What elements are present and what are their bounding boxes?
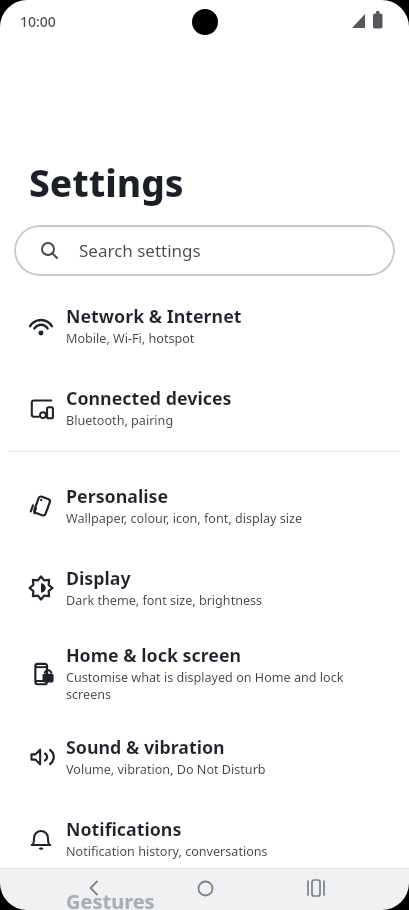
button[interactable] [288,875,344,901]
staticText: screens [66,686,112,703]
staticText: Wallpaper, colour, icon, font, display s… [66,510,303,527]
staticText: Mobile, Wi-Fi, hotspot [66,330,195,347]
staticText: Gestures [66,888,155,910]
staticText: Personalise [66,484,169,508]
staticText: Volume, vibration, Do Not Disturb [66,761,266,778]
button[interactable] [66,875,122,901]
button[interactable]: Personalise [0,484,409,527]
staticText: Network & Internet [66,304,242,328]
button[interactable]: Notifications [0,817,409,860]
staticText: Bluetooth, pairing [66,412,174,429]
staticText: 10:00 [20,12,56,31]
staticText: Home & lock screen [66,643,242,667]
button[interactable]: Search settings [14,225,395,276]
staticText: Notifications [66,817,182,841]
button[interactable]: Connected devices [0,386,409,429]
staticText: Customise what is displayed on Home and … [66,669,344,686]
button[interactable]: Home & lock screen [0,643,409,703]
button[interactable]: Network & Internet [0,304,409,347]
staticText: Search settings [79,239,201,262]
staticText: Dark theme, font size, brightness [66,592,263,609]
button[interactable] [177,875,233,901]
staticText: Sound & vibration [66,735,225,759]
staticText: Notification history, conversations [66,843,268,860]
button[interactable]: Sound & vibration [0,735,409,778]
button[interactable]: Display [0,566,409,609]
staticText: Display [66,566,131,590]
staticText: Settings [29,157,184,207]
staticText: Connected devices [66,386,232,410]
